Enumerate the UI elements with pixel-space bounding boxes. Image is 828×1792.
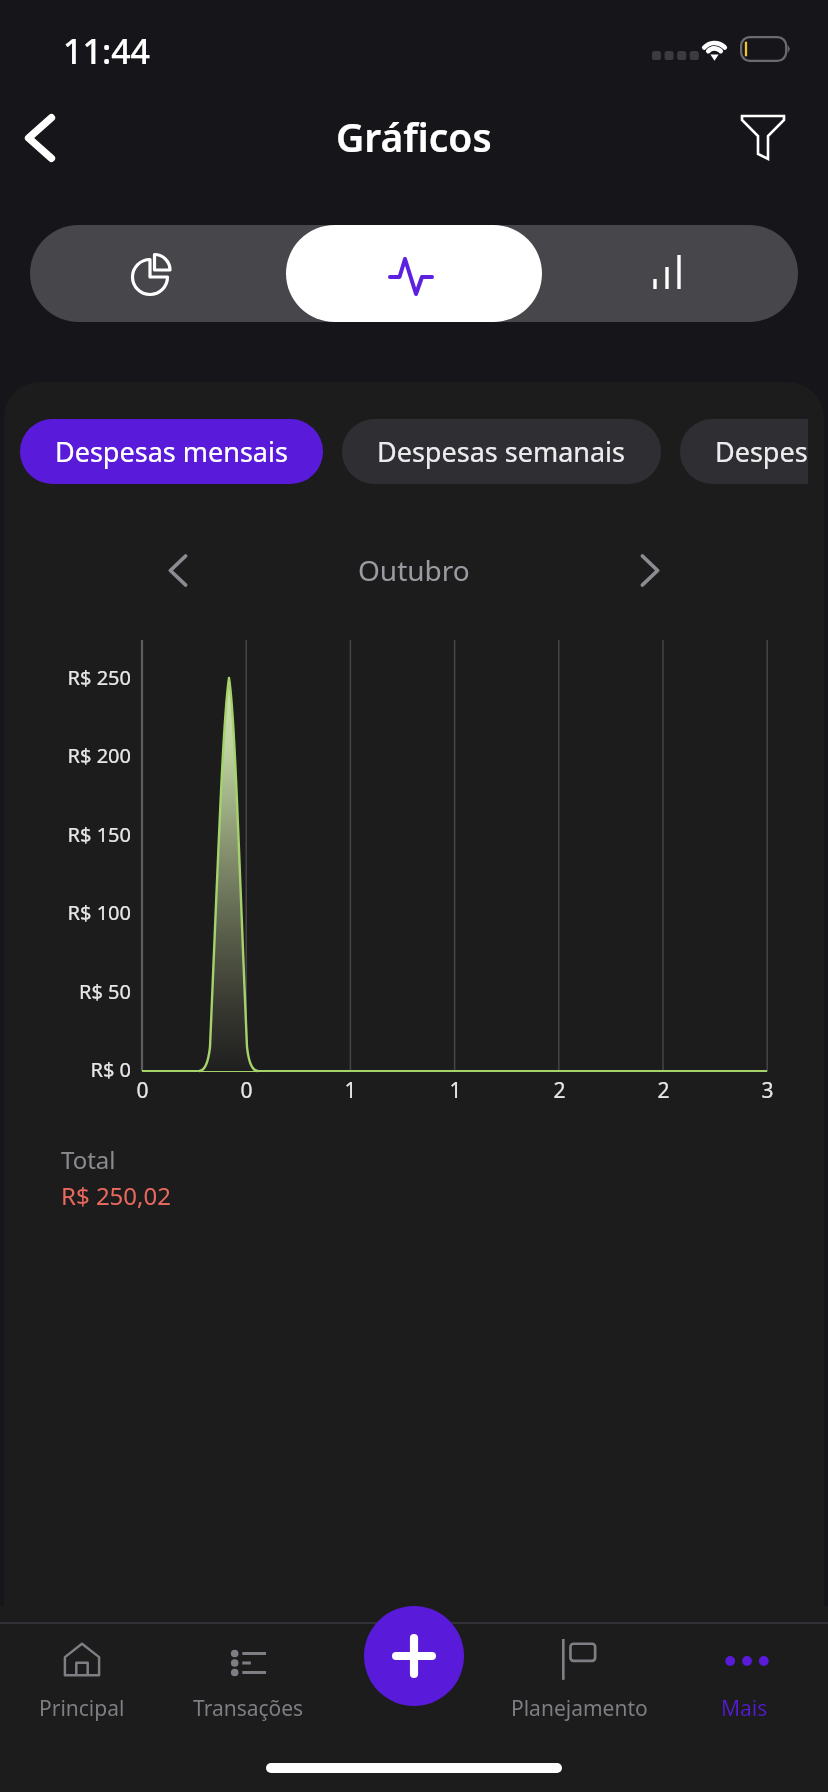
staticText: Outubro bbox=[358, 551, 470, 589]
staticText: Gráficos bbox=[336, 110, 492, 163]
button[interactable]: Despesas diárias bbox=[680, 419, 808, 484]
button[interactable]: Próximo mês bbox=[622, 542, 678, 598]
button[interactable]: Filtro bbox=[732, 107, 794, 169]
staticText: 1 bbox=[344, 1076, 357, 1105]
staticText: 2 bbox=[553, 1076, 566, 1105]
staticText: Mais bbox=[721, 1694, 768, 1723]
staticText: 2 bbox=[657, 1076, 670, 1105]
staticText: 0 bbox=[136, 1076, 149, 1105]
staticText: Total bbox=[61, 1143, 116, 1176]
staticText: 0 bbox=[240, 1076, 253, 1105]
button[interactable]: Gráfico de barras bbox=[542, 225, 798, 322]
staticText: Despesas mensais bbox=[55, 433, 288, 470]
staticText: Transações bbox=[193, 1694, 304, 1723]
staticText: R$ 100 bbox=[67, 899, 131, 926]
button[interactable]: Planejamento bbox=[479, 1624, 679, 1737]
button[interactable]: Gráfico de linha bbox=[286, 225, 542, 322]
button[interactable]: Gráfico de pizza bbox=[30, 225, 286, 322]
staticText: Despesas semanais bbox=[377, 433, 626, 470]
staticText: Principal bbox=[39, 1694, 125, 1723]
button[interactable]: Despesas semanais bbox=[342, 419, 661, 484]
staticText: 11:44 bbox=[63, 28, 151, 74]
staticText: R$ 250,02 bbox=[61, 1179, 171, 1212]
button[interactable]: Despesas mensais bbox=[20, 419, 323, 484]
staticText: Despesas diárias bbox=[715, 433, 808, 470]
staticText: R$ 0 bbox=[90, 1056, 131, 1083]
button[interactable]: Mais bbox=[644, 1624, 828, 1737]
button[interactable]: Voltar bbox=[8, 106, 72, 170]
staticText: Planejamento bbox=[511, 1694, 648, 1723]
staticText: R$ 200 bbox=[67, 742, 131, 769]
button[interactable]: Mês anterior bbox=[150, 542, 206, 598]
button[interactable]: Adicionar bbox=[364, 1606, 464, 1706]
staticText: R$ 250 bbox=[67, 664, 131, 691]
staticText: 3 bbox=[761, 1076, 774, 1105]
button[interactable]: Principal bbox=[0, 1624, 182, 1737]
staticText: R$ 50 bbox=[79, 978, 131, 1005]
button[interactable]: Transações bbox=[148, 1624, 348, 1737]
staticText: R$ 150 bbox=[67, 821, 131, 848]
staticText: 1 bbox=[449, 1076, 462, 1105]
